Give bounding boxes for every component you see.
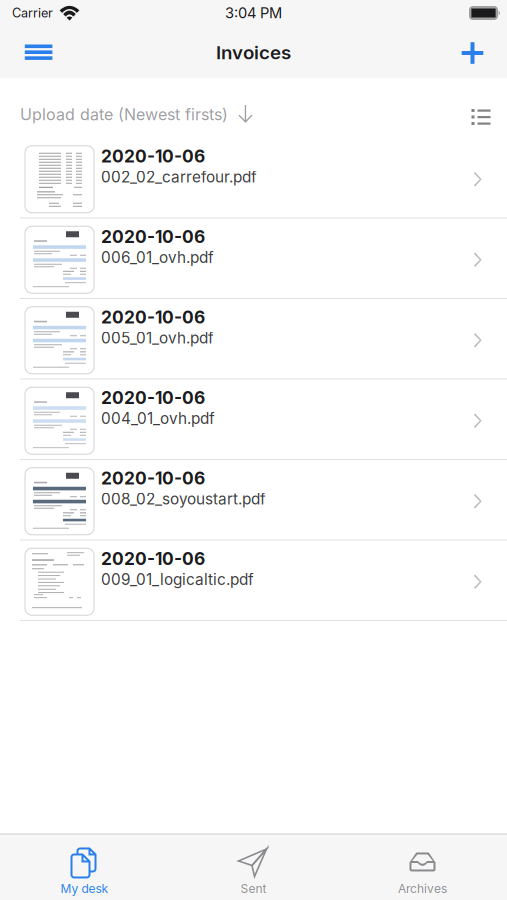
staticText: My desk	[60, 881, 108, 896]
button[interactable]: Archives	[338, 834, 507, 900]
button[interactable]: Add invoice	[451, 35, 485, 73]
staticText: 2020-10-06	[101, 387, 205, 408]
button[interactable]: 2020-10-06	[0, 460, 507, 540]
staticText: 005_01_ovh.pdf	[101, 329, 214, 347]
staticText: Upload date (Newest firsts)	[20, 105, 228, 124]
button[interactable]: 2020-10-06	[0, 379, 507, 460]
staticText: 2020-10-06	[101, 548, 205, 569]
button[interactable]: 2020-10-06	[0, 540, 507, 621]
staticText: Invoices	[216, 41, 291, 64]
staticText: 2020-10-06	[101, 307, 205, 328]
staticText: Archives	[398, 881, 447, 896]
button[interactable]: View options	[470, 105, 489, 123]
staticText: 006_01_ovh.pdf	[101, 248, 214, 267]
button[interactable]: Sent	[169, 834, 338, 900]
staticText: Carrier	[12, 5, 53, 21]
staticText: 3:04 PM	[225, 4, 282, 22]
staticText: Sent	[240, 881, 266, 896]
button[interactable]: My desk	[0, 834, 169, 900]
staticText: 002_02_carrefour.pdf	[101, 168, 257, 186]
staticText: 008_02_soyoustart.pdf	[101, 490, 266, 508]
staticText: 004_01_ovh.pdf	[101, 409, 215, 428]
button[interactable]: Upload date (Newest firsts)	[20, 104, 254, 125]
staticText: 2020-10-06	[101, 146, 205, 167]
button[interactable]: 2020-10-06	[0, 138, 507, 218]
staticText: 2020-10-06	[101, 468, 205, 489]
staticText: 2020-10-06	[101, 226, 205, 247]
button[interactable]: 2020-10-06	[0, 218, 507, 299]
button[interactable]: Menu	[21, 35, 55, 73]
staticText: 009_01_logicaltic.pdf	[101, 570, 254, 589]
button[interactable]: 2020-10-06	[0, 299, 507, 379]
